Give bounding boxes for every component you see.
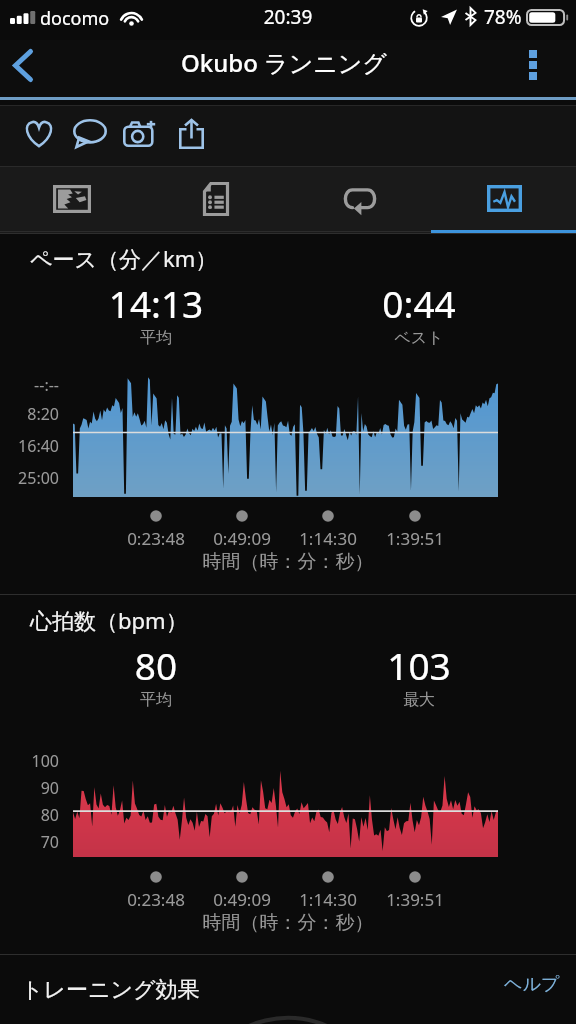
staticText: 8:20	[0, 403, 59, 425]
staticText: 0:44	[319, 278, 519, 328]
staticText: 平均	[56, 328, 256, 348]
button[interactable]: トレーニング効果	[0, 955, 576, 1024]
staticText: 14:13	[56, 278, 256, 328]
staticText: Okubo ランニング	[181, 46, 387, 79]
staticText: ベスト	[319, 328, 519, 348]
staticText: 1:39:51	[365, 888, 465, 911]
button[interactable]: Add photo	[115, 108, 166, 159]
staticText: 103	[319, 640, 519, 690]
staticText: 1:39:51	[365, 527, 465, 550]
button[interactable]: Map	[0, 167, 144, 230]
staticText: 0:49:09	[192, 527, 292, 550]
staticText: 78%	[484, 4, 522, 30]
button[interactable]: Laps	[288, 167, 432, 230]
staticText: ヘルプ	[504, 973, 560, 996]
staticText: 25:00	[0, 467, 59, 489]
button[interactable]: Back	[0, 37, 51, 93]
staticText: 100	[0, 750, 59, 772]
staticText: 0:23:48	[106, 527, 206, 550]
staticText: 70	[0, 831, 59, 853]
staticText: 80	[0, 804, 59, 826]
staticText: 16:40	[0, 435, 59, 457]
staticText: --:--	[0, 374, 59, 396]
staticText: 0:49:09	[192, 888, 292, 911]
staticText: 90	[0, 777, 59, 799]
staticText: 0:23:48	[106, 888, 206, 911]
staticText: ペース（分／km）	[30, 243, 218, 273]
button[interactable]: ヘルプ	[492, 962, 572, 1006]
staticText: 1:14:30	[278, 527, 378, 550]
staticText: トレーニング効果	[21, 976, 200, 1004]
staticText: 1:14:30	[278, 888, 378, 911]
button[interactable]: Details	[144, 167, 288, 230]
button[interactable]: Charts	[432, 167, 576, 230]
staticText: 20:39	[238, 4, 338, 30]
staticText: docomo	[40, 6, 110, 31]
staticText: 最大	[319, 690, 519, 710]
staticText: 心拍数（bpm）	[30, 605, 188, 635]
button[interactable]: Comment	[64, 108, 115, 159]
button[interactable]: More options	[505, 37, 561, 93]
staticText: 時間（時：分：秒）	[0, 911, 576, 935]
button[interactable]: Share	[166, 108, 217, 159]
staticText: 80	[56, 640, 256, 690]
staticText: 時間（時：分：秒）	[0, 550, 576, 574]
button[interactable]: Like	[13, 108, 64, 159]
staticText: 平均	[56, 690, 256, 710]
